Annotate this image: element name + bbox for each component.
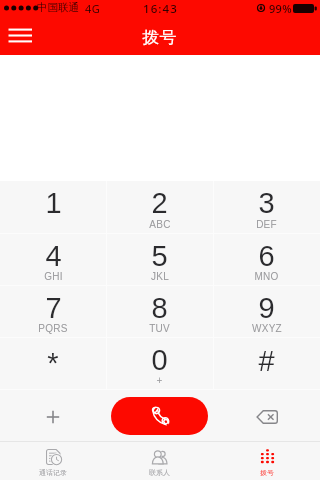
button[interactable]: 联系人: [106, 442, 213, 480]
button[interactable]: 6: [213, 234, 320, 285]
staticText: +: [156, 375, 163, 386]
button[interactable]: 1: [0, 181, 106, 233]
staticText: 99%: [269, 1, 292, 16]
button[interactable]: 2: [106, 181, 213, 233]
staticText: 中国联通: [37, 1, 79, 14]
button[interactable]: #: [213, 338, 320, 389]
button[interactable]: 9: [213, 286, 320, 337]
staticText: 9: [258, 292, 275, 324]
staticText: WXYZ: [252, 323, 282, 334]
staticText: 2: [151, 187, 168, 219]
staticText: GHI: [44, 271, 63, 282]
button[interactable]: 3: [213, 181, 320, 233]
staticText: *: [47, 347, 59, 379]
staticText: 4: [45, 240, 62, 272]
button[interactable]: 拨号: [213, 442, 320, 480]
staticText: 4G: [85, 1, 101, 16]
staticText: 16:43: [143, 1, 178, 17]
button[interactable]: Call: [111, 397, 208, 435]
staticText: ABC: [149, 219, 171, 230]
staticText: 0: [151, 344, 168, 376]
staticText: 5: [151, 240, 168, 272]
button[interactable]: 7: [0, 286, 106, 337]
staticText: 7: [45, 292, 62, 324]
staticText: #: [258, 345, 275, 377]
button[interactable]: 0: [106, 338, 213, 389]
staticText: DEF: [256, 219, 277, 230]
button[interactable]: Add: [0, 390, 106, 441]
staticText: 6: [258, 240, 275, 272]
staticText: MNO: [254, 271, 279, 282]
staticText: 拨号: [260, 468, 274, 477]
button[interactable]: 8: [106, 286, 213, 337]
button[interactable]: 通话记录: [0, 442, 106, 480]
button[interactable]: 4: [0, 234, 106, 285]
button[interactable]: *: [0, 338, 106, 389]
button[interactable]: Backspace: [213, 390, 320, 441]
staticText: 联系人: [149, 468, 170, 477]
staticText: JKL: [151, 271, 169, 282]
staticText: TUV: [149, 323, 170, 334]
staticText: 拨号: [142, 27, 178, 48]
button[interactable]: 5: [106, 234, 213, 285]
staticText: 8: [151, 292, 168, 324]
staticText: PQRS: [38, 323, 68, 334]
staticText: 通话记录: [39, 468, 67, 477]
staticText: 1: [45, 187, 62, 219]
staticText: 3: [258, 187, 275, 219]
button[interactable]: Menu: [7, 22, 35, 48]
